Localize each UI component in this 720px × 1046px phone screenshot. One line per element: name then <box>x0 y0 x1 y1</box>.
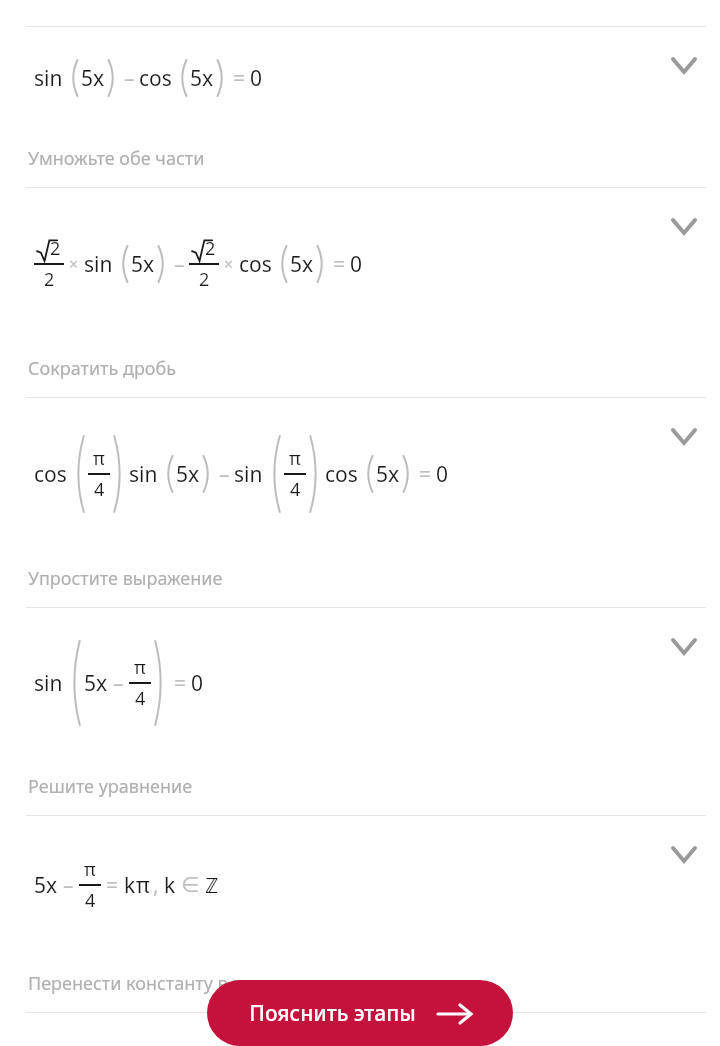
staticText: 5x <box>176 460 200 489</box>
button[interactable]: Развернуть шаг <box>0 27 720 187</box>
staticText: ℤ <box>205 871 219 900</box>
button[interactable]: Пояснить этапы <box>207 980 513 1046</box>
staticText: = <box>233 64 246 93</box>
staticText: – <box>113 669 124 698</box>
staticText: π <box>84 857 96 882</box>
staticText: k <box>124 871 136 900</box>
staticText: sin <box>34 64 63 93</box>
staticText: Сократить дробь <box>28 356 177 381</box>
staticText: cos <box>239 250 272 279</box>
staticText: = <box>419 460 432 489</box>
staticText: Умножьте обе части <box>28 146 205 171</box>
staticText: 0 <box>191 669 204 698</box>
staticText: – <box>219 460 230 489</box>
button[interactable]: Развернуть шаг <box>0 816 720 1012</box>
staticText: × <box>69 253 79 275</box>
staticText: 2 <box>199 267 210 292</box>
staticText: 4 <box>94 477 105 502</box>
staticText: 4 <box>290 477 301 502</box>
staticText: π <box>289 446 301 471</box>
button[interactable]: Развернуть шаг <box>660 412 708 460</box>
button[interactable]: Развернуть шаг <box>0 608 720 815</box>
button[interactable]: Развернуть шаг <box>660 202 708 250</box>
staticText: , <box>153 871 159 900</box>
staticText: × <box>224 253 234 275</box>
staticText: Упростите выражение <box>28 566 223 591</box>
staticText: 5x <box>190 64 214 93</box>
staticText: 0 <box>250 64 263 93</box>
staticText: 5x <box>84 669 108 698</box>
button[interactable]: Развернуть шаг <box>0 188 720 397</box>
staticText: π <box>136 871 150 900</box>
staticText: ∈ <box>181 873 200 897</box>
staticText: 4 <box>135 686 146 711</box>
staticText: 2 <box>50 236 61 261</box>
staticText: 5x <box>81 64 105 93</box>
staticText: = <box>174 669 187 698</box>
staticText: 0 <box>350 250 363 279</box>
staticText: Пояснить этапы <box>249 999 416 1028</box>
staticText: sin <box>234 460 263 489</box>
staticText: 5x <box>131 250 155 279</box>
button[interactable]: Развернуть шаг <box>660 41 708 89</box>
staticText: 2 <box>205 236 216 261</box>
staticText: 4 <box>85 888 96 913</box>
staticText: sin <box>34 669 63 698</box>
staticText: 2 <box>44 267 55 292</box>
staticText: cos <box>34 460 67 489</box>
staticText: = <box>333 250 346 279</box>
staticText: 5x <box>34 871 58 900</box>
button[interactable]: Развернуть шаг <box>660 622 708 670</box>
staticText: sin <box>129 460 158 489</box>
staticText: π <box>134 655 146 680</box>
staticText: cos <box>325 460 358 489</box>
button[interactable]: Развернуть шаг <box>0 398 720 607</box>
staticText: 5x <box>376 460 400 489</box>
staticText: 0 <box>436 460 449 489</box>
button[interactable]: Развернуть шаг <box>660 830 708 878</box>
staticText: 5x <box>290 250 314 279</box>
staticText: = <box>106 871 119 900</box>
staticText: – <box>174 250 185 279</box>
staticText: k <box>164 871 176 900</box>
staticText: π <box>93 446 105 471</box>
staticText: cos <box>139 64 172 93</box>
staticText: – <box>124 64 135 93</box>
staticText: – <box>63 871 74 900</box>
staticText: Перенести константу в правую часть равен… <box>28 971 445 996</box>
staticText: Решите уравнение <box>28 774 193 799</box>
staticText: sin <box>84 250 113 279</box>
